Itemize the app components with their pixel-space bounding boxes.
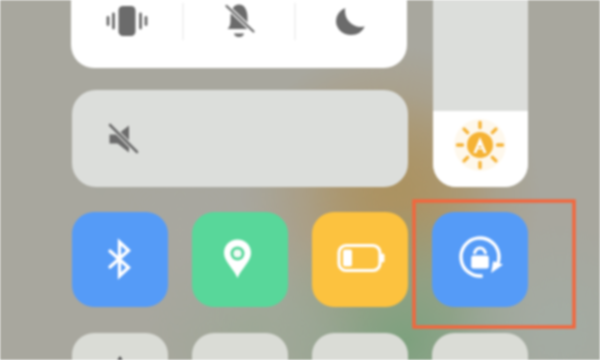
button[interactable]: Flashlight [192,333,288,360]
button[interactable]: Hotspot [432,333,528,360]
button[interactable]: Volume [72,90,408,187]
button[interactable]: Brightness [433,0,528,187]
button[interactable]: Location [192,212,288,307]
button[interactable]: Auto-rotate [432,212,528,307]
button[interactable]: Do not disturb [295,0,407,68]
button[interactable]: Silent [183,0,295,68]
button[interactable]: Airplane mode [72,333,168,360]
button[interactable]: Battery saver [312,212,408,307]
button[interactable]: Bluetooth [72,212,168,307]
button[interactable]: Vibrate [71,0,183,68]
button[interactable]: Screen record [312,333,408,360]
